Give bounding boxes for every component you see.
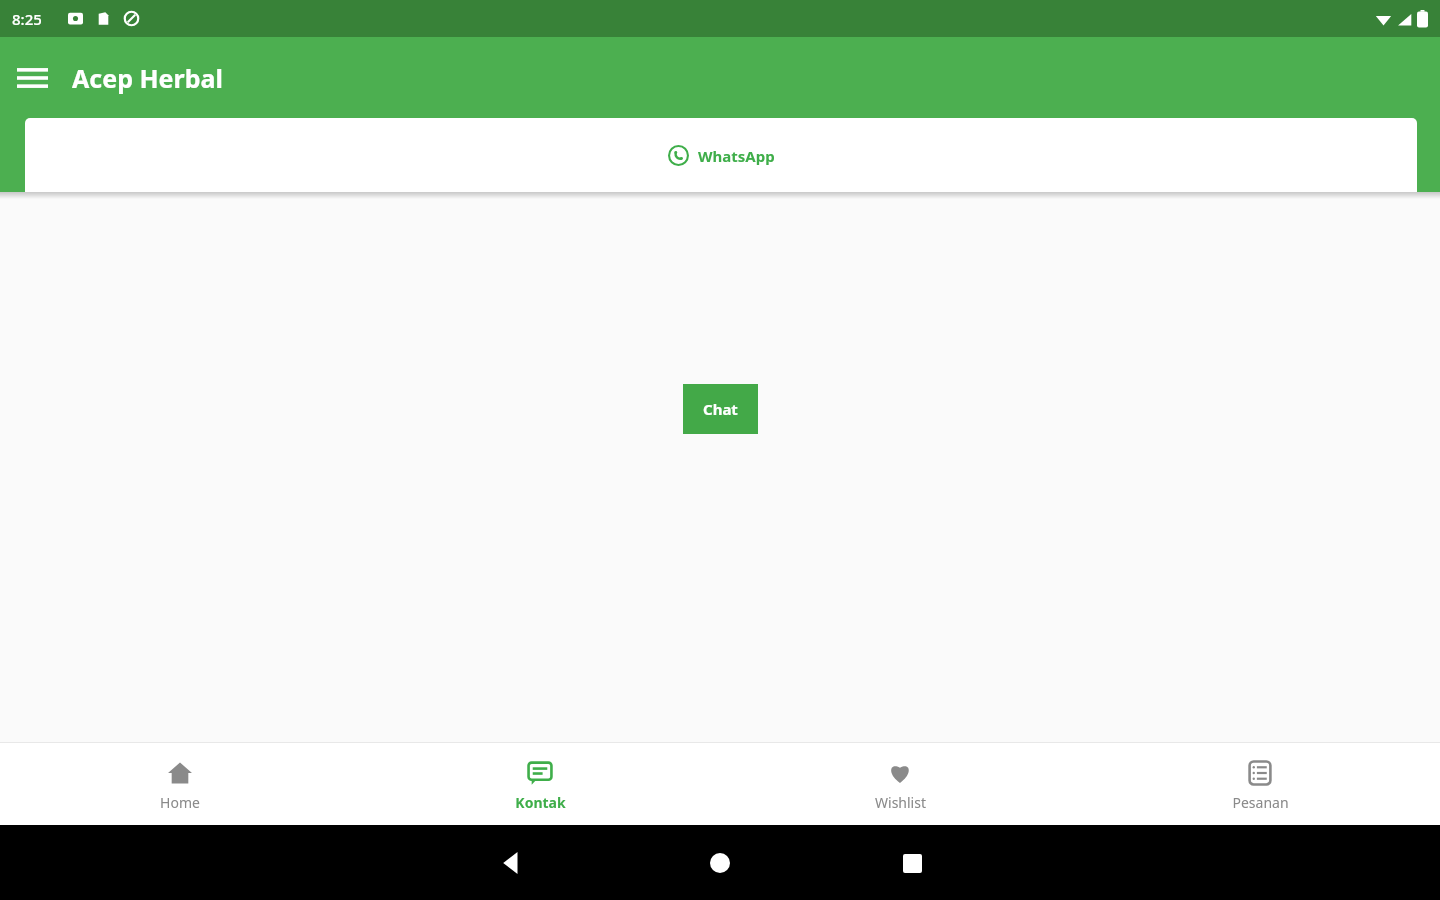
staticText: Home bbox=[160, 793, 200, 812]
button[interactable]: Kontak bbox=[360, 742, 720, 825]
button[interactable]: Recent apps bbox=[892, 843, 932, 883]
staticText: Acep Herbal bbox=[72, 61, 223, 95]
staticText: Wishlist bbox=[875, 793, 926, 812]
staticText: Pesanan bbox=[1232, 793, 1289, 812]
staticText: WhatsApp bbox=[698, 146, 775, 166]
staticText: Kontak bbox=[515, 793, 566, 812]
button[interactable]: Back bbox=[492, 843, 532, 883]
button[interactable]: WhatsApp bbox=[25, 118, 1417, 192]
staticText: Chat bbox=[703, 399, 738, 419]
staticText: 8:25 bbox=[12, 9, 42, 29]
button[interactable]: Home bbox=[0, 742, 360, 825]
button[interactable]: Home bbox=[700, 843, 740, 883]
button[interactable]: Chat bbox=[683, 384, 758, 434]
button[interactable]: Wishlist bbox=[720, 742, 1080, 825]
button[interactable]: Open navigation menu bbox=[8, 54, 56, 102]
button[interactable]: Pesanan bbox=[1080, 742, 1440, 825]
